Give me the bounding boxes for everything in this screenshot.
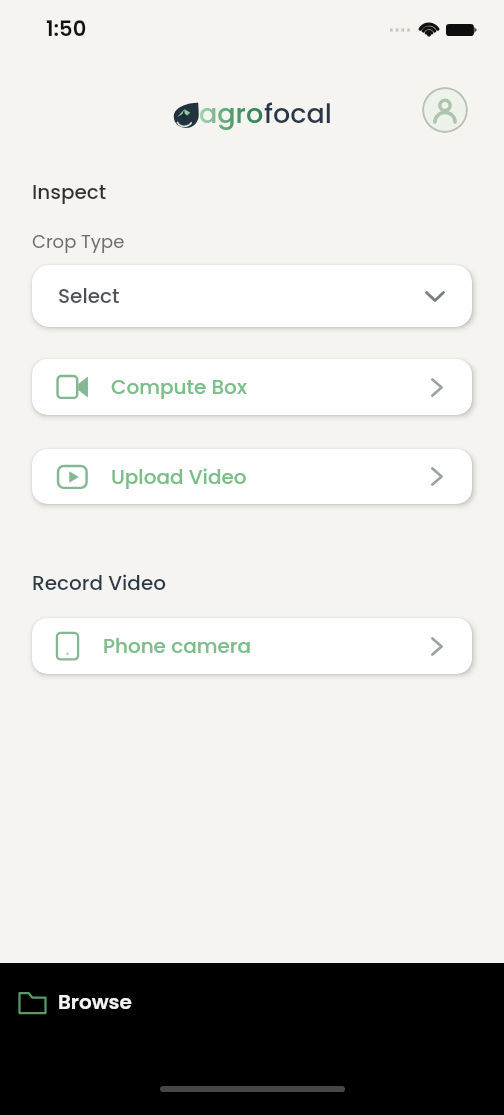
staticText: Browse: [58, 988, 132, 1016]
button[interactable]: Select: [32, 265, 472, 327]
staticText: Inspect: [32, 178, 107, 206]
staticText: Upload Video: [111, 463, 247, 491]
staticText: Select: [58, 282, 120, 310]
button[interactable]: Upload Video: [32, 449, 472, 504]
staticText: focal: [264, 95, 332, 133]
staticText: Crop Type: [32, 229, 125, 254]
staticText: 1:50: [46, 14, 87, 43]
button[interactable]: Compute Box: [32, 359, 472, 415]
button[interactable]: Profile: [422, 87, 468, 133]
button[interactable]: Phone camera: [32, 618, 472, 674]
staticText: Compute Box: [111, 373, 247, 401]
staticText: Phone camera: [103, 632, 252, 660]
staticText: agro: [199, 95, 264, 133]
button[interactable]: Browse: [11, 983, 138, 1024]
staticText: Record Video: [32, 569, 166, 597]
